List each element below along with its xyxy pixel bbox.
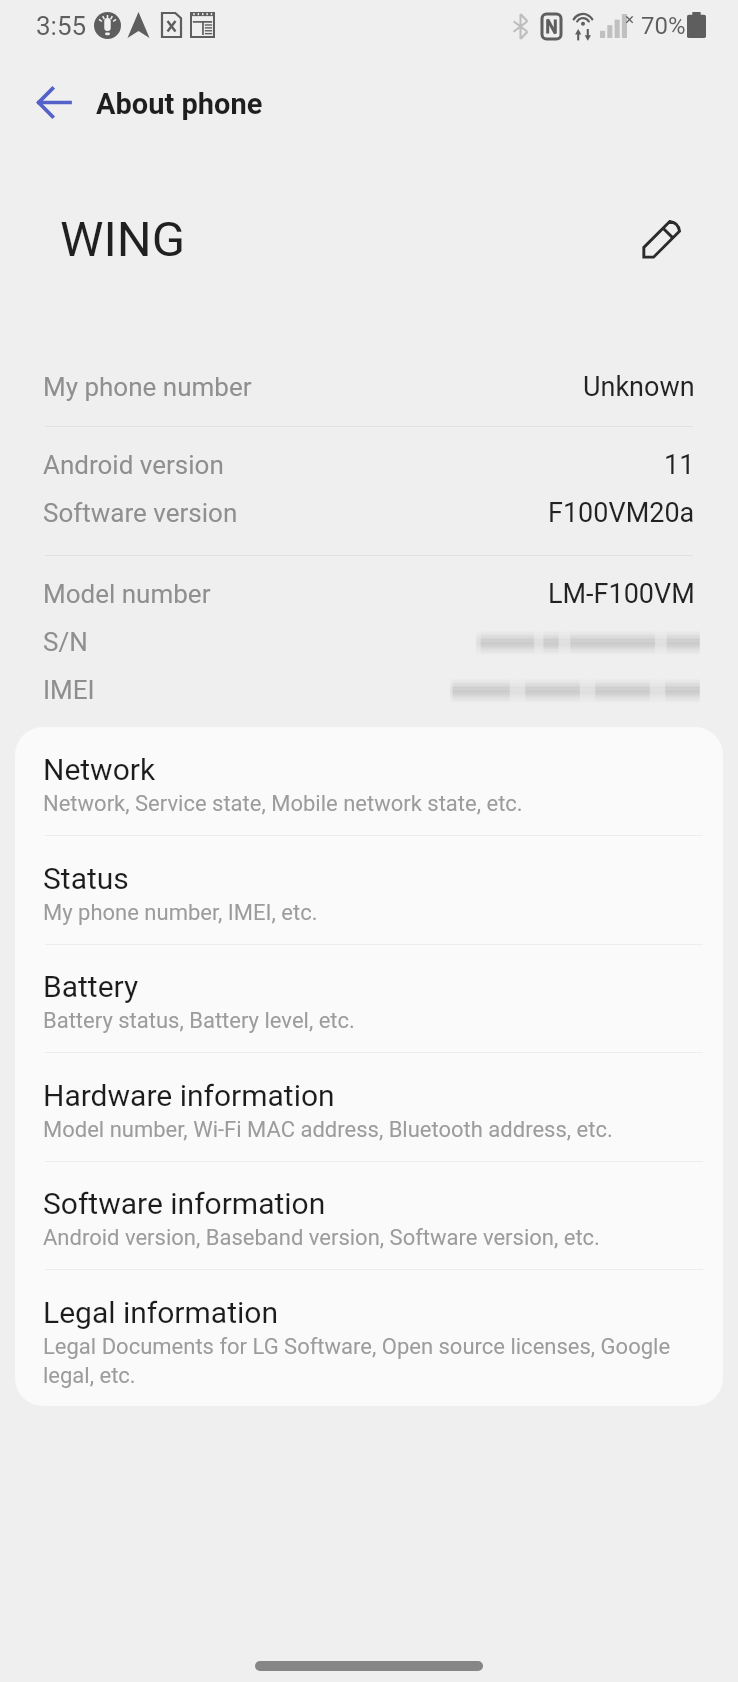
staticText: Android version bbox=[43, 450, 224, 480]
staticText: Legal Documents for LG Software, Open so… bbox=[43, 1334, 671, 1360]
staticText: Battery status, Battery level, etc. bbox=[43, 1008, 355, 1034]
staticText: Network, Service state, Mobile network s… bbox=[43, 791, 523, 817]
staticText: × bbox=[625, 9, 635, 29]
staticText: Network bbox=[43, 752, 156, 787]
button[interactable]: Back bbox=[22, 70, 86, 134]
staticText: My phone number, IMEI, etc. bbox=[43, 900, 318, 926]
staticText: My phone number bbox=[43, 372, 252, 402]
staticText: Software version bbox=[43, 498, 238, 528]
staticText: F100VM20a bbox=[548, 497, 695, 529]
staticText: Status bbox=[43, 861, 129, 896]
staticText: 70% bbox=[641, 12, 686, 40]
staticText: WING bbox=[60, 211, 186, 268]
staticText: 11 bbox=[664, 449, 695, 481]
button[interactable]: Software information bbox=[15, 1161, 723, 1270]
staticText: Software information bbox=[43, 1186, 326, 1221]
staticText: 3:55 bbox=[36, 11, 87, 41]
staticText: Model number, Wi-Fi MAC address, Bluetoo… bbox=[43, 1117, 613, 1143]
staticText: Battery bbox=[43, 969, 139, 1004]
staticText: Legal information bbox=[43, 1295, 278, 1330]
staticText: Android version, Baseband version, Softw… bbox=[43, 1225, 600, 1251]
staticText: IMEI bbox=[43, 675, 95, 705]
button[interactable]: Battery bbox=[15, 944, 723, 1053]
button[interactable]: Edit device name bbox=[633, 206, 694, 267]
staticText: LM-F100VM bbox=[548, 578, 695, 610]
button[interactable]: Legal information bbox=[15, 1270, 723, 1406]
staticText: Model number bbox=[43, 579, 211, 609]
staticText: Unknown bbox=[583, 371, 695, 403]
button[interactable]: Status bbox=[15, 836, 723, 945]
staticText: legal, etc. bbox=[43, 1363, 136, 1389]
button[interactable]: Hardware information bbox=[15, 1053, 723, 1162]
button[interactable]: Network bbox=[15, 727, 723, 836]
staticText: Hardware information bbox=[43, 1078, 335, 1113]
staticText: About phone bbox=[96, 87, 263, 121]
staticText: S/N bbox=[43, 627, 88, 657]
